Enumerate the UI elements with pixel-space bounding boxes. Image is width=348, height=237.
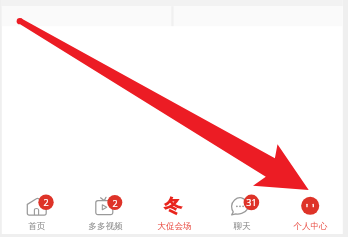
staticText: 个人中心 bbox=[293, 221, 328, 232]
button[interactable]: 聊天 bbox=[208, 186, 276, 230]
button[interactable]: 首页 bbox=[2, 186, 71, 230]
button[interactable]: 多多视频 bbox=[71, 186, 140, 230]
staticText: 首页 bbox=[28, 221, 46, 232]
button[interactable]: 大促会场 bbox=[140, 186, 208, 230]
staticText: 2 bbox=[112, 197, 118, 209]
staticText: 冬 bbox=[164, 195, 182, 218]
staticText: 31 bbox=[246, 196, 257, 208]
staticText: 大促会场 bbox=[157, 221, 192, 232]
button[interactable]: 个人中心 bbox=[276, 186, 344, 230]
staticText: 聊天 bbox=[233, 221, 251, 232]
staticText: 多多视频 bbox=[88, 221, 123, 232]
staticText: 2 bbox=[43, 196, 49, 208]
